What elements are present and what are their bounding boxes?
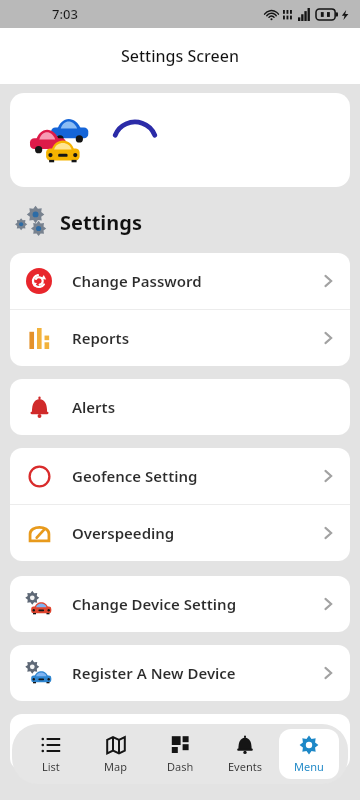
staticText: 7:03 — [52, 5, 78, 23]
staticText: Geofence Setting — [72, 466, 198, 486]
button[interactable]: List — [21, 729, 81, 779]
staticText: Settings Screen — [121, 45, 239, 67]
button[interactable]: Register A New Device — [10, 645, 350, 701]
button[interactable]: Change Password — [10, 253, 350, 309]
button[interactable]: Map — [85, 729, 145, 779]
staticText: Register A New Device — [72, 663, 236, 683]
button[interactable]: Overspeeding — [10, 505, 350, 561]
staticText: Change Device Setting — [72, 594, 237, 614]
button[interactable]: Dash — [150, 729, 210, 779]
button[interactable]: Change Language — [10, 714, 350, 770]
button[interactable]: Menu — [279, 729, 339, 779]
staticText: Alerts — [72, 397, 116, 417]
staticText: Menu — [294, 759, 324, 774]
button[interactable]: Alerts — [10, 379, 350, 435]
staticText: Map — [104, 759, 127, 774]
staticText: Dash — [167, 759, 194, 774]
staticText: Settings — [60, 209, 142, 236]
button[interactable]: Reports — [10, 310, 350, 366]
button[interactable]: Change Device Setting — [10, 576, 350, 632]
staticText: Change Language — [72, 732, 204, 752]
staticText: List — [42, 759, 60, 774]
button[interactable]: Geofence Setting — [10, 448, 350, 504]
staticText: Reports — [72, 328, 130, 348]
staticText: Overspeeding — [72, 523, 175, 543]
staticText: Change Password — [72, 271, 202, 291]
button[interactable]: Events — [215, 729, 275, 779]
staticText: Events — [228, 759, 262, 774]
